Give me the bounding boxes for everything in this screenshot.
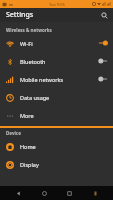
button[interactable]: Off <box>97 74 109 84</box>
staticText: Data usage <box>20 94 109 101</box>
staticText: Home <box>20 143 109 150</box>
staticText: Tue 9:55 <box>49 2 65 7</box>
button[interactable]: Display <box>0 155 113 173</box>
button[interactable]: Recents <box>62 186 76 200</box>
button[interactable]: Home <box>37 186 51 200</box>
staticText: Device <box>6 130 21 136</box>
staticText: Wi-Fi <box>20 40 97 47</box>
button[interactable]: Search <box>98 9 110 21</box>
staticText: Wireless & networks <box>6 27 52 33</box>
button[interactable]: More <box>0 106 113 124</box>
staticText: Settings <box>6 10 34 20</box>
button[interactable]: Home <box>0 137 113 155</box>
button[interactable]: Data usage <box>0 88 113 106</box>
staticText: Display <box>20 161 109 168</box>
staticText: Bluetooth <box>20 58 97 65</box>
button[interactable]: Menu <box>88 186 102 200</box>
button[interactable]: Back <box>11 186 25 200</box>
staticText: Mobile networks <box>20 76 97 83</box>
button[interactable]: Bluetooth <box>0 52 113 70</box>
button[interactable]: On <box>97 38 109 48</box>
staticText: More <box>20 112 109 119</box>
button[interactable]: Off <box>97 56 109 66</box>
button[interactable]: Mobile networks <box>0 70 113 88</box>
button[interactable]: Wi-Fi <box>0 34 113 52</box>
